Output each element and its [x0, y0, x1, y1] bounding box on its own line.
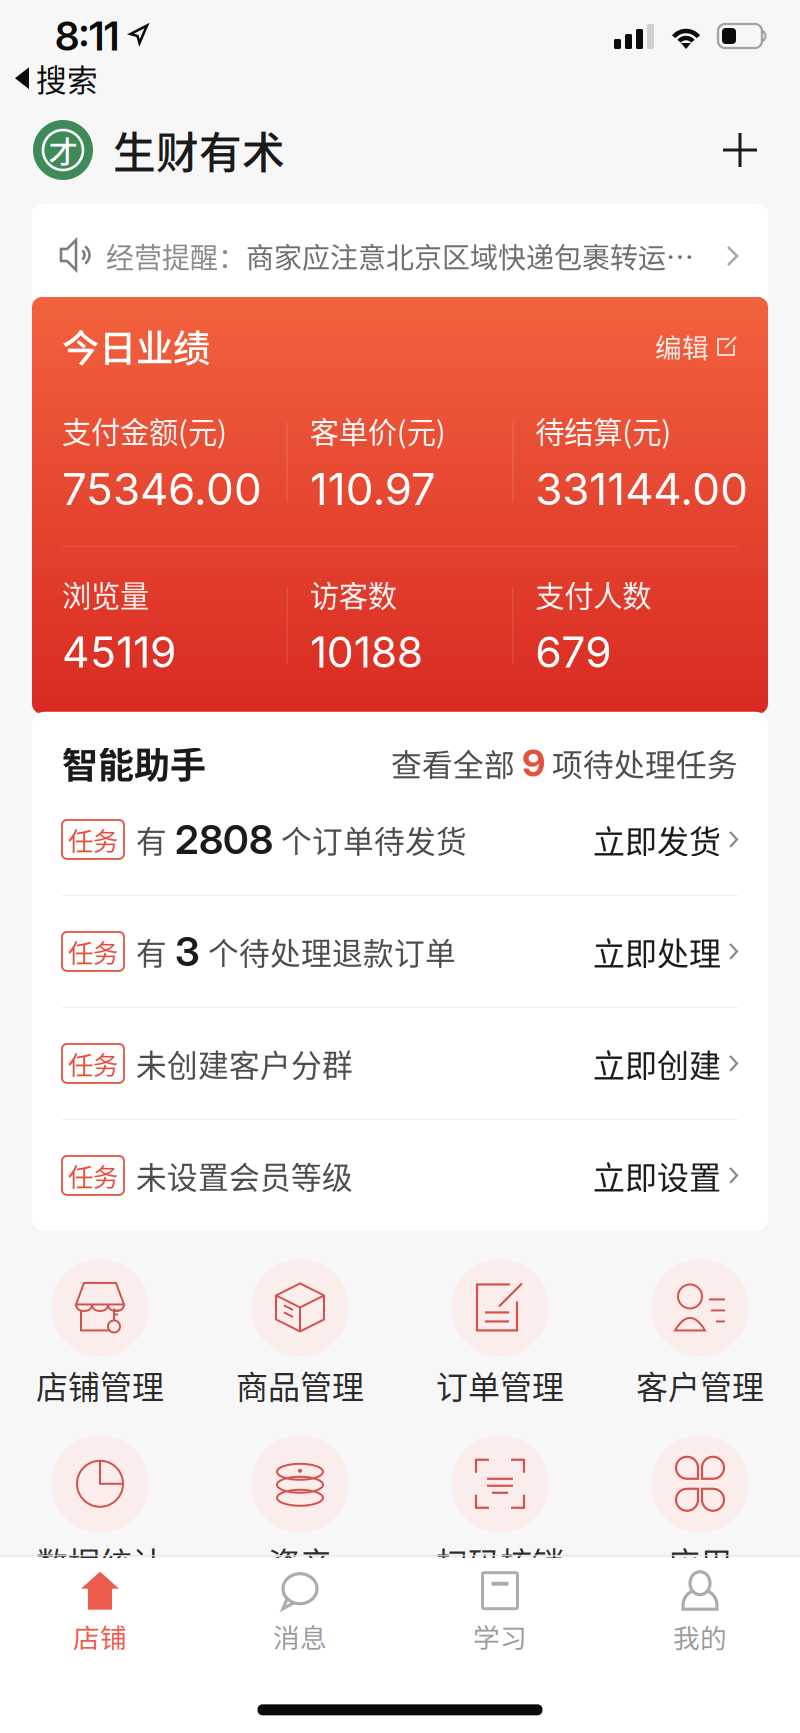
staticText: 资产 [268, 1538, 332, 1585]
button[interactable]: 店铺 [0, 1571, 200, 1655]
staticText: 待结算(元) [535, 409, 671, 451]
button[interactable]: 学习 [400, 1571, 600, 1655]
button[interactable]: 商品管理 [200, 1259, 400, 1408]
staticText: 搜索 [36, 56, 98, 100]
staticText: 消息 [273, 1617, 327, 1655]
staticText: 才 [48, 129, 77, 171]
button[interactable]: 应用 [600, 1435, 800, 1585]
staticText: 店铺管理 [36, 1362, 164, 1408]
button[interactable]: 资产 [200, 1435, 400, 1585]
staticText: 学习 [473, 1617, 527, 1655]
button[interactable]: 查看全部 [391, 740, 738, 785]
staticText: 8:11 [55, 12, 119, 60]
button[interactable]: 订单管理 [400, 1259, 600, 1408]
staticText: 店铺 [73, 1617, 127, 1655]
staticText: 生财有术 [113, 119, 285, 181]
staticText: 商品管理 [236, 1362, 364, 1408]
staticText: 个订单待发货 [281, 817, 467, 862]
staticText: 10188 [310, 626, 423, 678]
staticText: 立即发货 [593, 816, 721, 863]
staticText: 331144.00 [535, 462, 748, 516]
button[interactable]: 消息 [200, 1571, 400, 1655]
button[interactable]: 新建 [712, 122, 768, 178]
staticText: 项待处理任务 [545, 741, 738, 785]
staticText: 任务 [68, 821, 118, 858]
staticText: 访客数 [310, 573, 397, 615]
staticText: 客户管理 [636, 1362, 764, 1408]
button[interactable]: 任务 [62, 896, 738, 1007]
staticText: 9 [522, 740, 545, 785]
staticText: 110.97 [310, 462, 436, 516]
staticText: 查看全部 [391, 741, 522, 785]
staticText: 我的 [673, 1617, 727, 1656]
staticText: 未创建客户分群 [136, 1041, 353, 1086]
staticText: 任务 [68, 1045, 118, 1082]
staticText: 3 [175, 927, 200, 976]
button[interactable]: 经营提醒： [32, 204, 768, 297]
button[interactable]: 我的 [600, 1570, 800, 1656]
staticText: 45119 [62, 626, 176, 678]
staticText: 编辑 [655, 327, 709, 365]
staticText: 扫码核销 [436, 1538, 564, 1585]
staticText: 有 [136, 817, 167, 862]
button[interactable]: 任务 [62, 1120, 738, 1231]
staticText: 任务 [68, 1157, 118, 1194]
staticText: 75346.00 [62, 462, 262, 516]
staticText: 立即处理 [593, 928, 721, 975]
staticText: 应用 [668, 1538, 732, 1585]
staticText: 未设置会员等级 [136, 1153, 353, 1198]
staticText: 679 [535, 626, 611, 678]
staticText: 商家应注意北京区域快递包裹转运… [246, 236, 694, 276]
staticText: 支付人数 [535, 573, 651, 615]
button[interactable]: 客户管理 [600, 1259, 800, 1408]
button[interactable]: 任务 [62, 1008, 738, 1119]
staticText: 个待处理退款订单 [208, 929, 456, 974]
staticText: 智能助手 [62, 737, 206, 789]
staticText: 有 [136, 929, 167, 974]
button[interactable]: 任务 [62, 784, 738, 895]
staticText: 客单价(元) [310, 409, 446, 451]
button[interactable]: 编辑 [655, 327, 738, 365]
staticText: 支付金额(元) [62, 409, 227, 451]
staticText: 2808 [175, 815, 273, 864]
staticText: 数据统计 [36, 1538, 164, 1585]
staticText: 立即设置 [593, 1152, 721, 1199]
staticText: 浏览量 [62, 573, 149, 615]
button[interactable]: 数据统计 [0, 1435, 200, 1585]
staticText: 经营提醒： [106, 236, 246, 276]
staticText: 今日业绩 [62, 319, 210, 373]
staticText: 任务 [68, 933, 118, 970]
button[interactable]: 扫码核销 [400, 1435, 600, 1585]
staticText: 立即创建 [593, 1040, 721, 1087]
button[interactable]: 店铺管理 [0, 1259, 200, 1408]
staticText: 订单管理 [436, 1362, 564, 1408]
